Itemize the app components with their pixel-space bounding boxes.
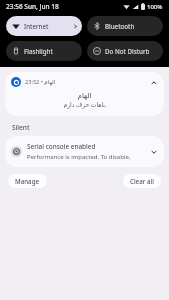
staticText: Silent bbox=[12, 123, 30, 132]
staticText: الهام • 23:52 bbox=[25, 78, 56, 86]
button[interactable]: الهام • 23:52 bbox=[5, 72, 164, 116]
button[interactable]: Flashlight bbox=[6, 41, 82, 61]
button[interactable]: Clear all bbox=[123, 174, 161, 188]
button[interactable]: Bluetooth bbox=[87, 16, 163, 36]
staticText: باهات حرف دارم. bbox=[63, 101, 107, 109]
button[interactable]: Internet bbox=[6, 16, 82, 36]
button[interactable]: Collapse notification bbox=[149, 78, 158, 87]
button[interactable]: Do Not Disturb bbox=[87, 41, 163, 61]
staticText: 100% bbox=[147, 3, 163, 11]
staticText: Serial console enabled bbox=[27, 142, 96, 151]
staticText: Clear all bbox=[130, 177, 154, 185]
staticText: Flashlight bbox=[24, 47, 53, 55]
staticText: Internet bbox=[24, 22, 49, 30]
button[interactable]: Manage bbox=[8, 174, 47, 188]
staticText: الهام bbox=[77, 91, 92, 99]
staticText: Do Not Disturb bbox=[105, 47, 150, 55]
button[interactable]: Expand notification bbox=[149, 147, 158, 156]
staticText: Bluetooth bbox=[105, 22, 135, 30]
staticText: 23:56 Sun, Jun 18 bbox=[6, 2, 59, 11]
staticText: Manage bbox=[15, 177, 40, 185]
staticText: Performance is impacted. To disable, che… bbox=[27, 153, 146, 161]
button[interactable]: Serial console enabled bbox=[5, 136, 164, 167]
